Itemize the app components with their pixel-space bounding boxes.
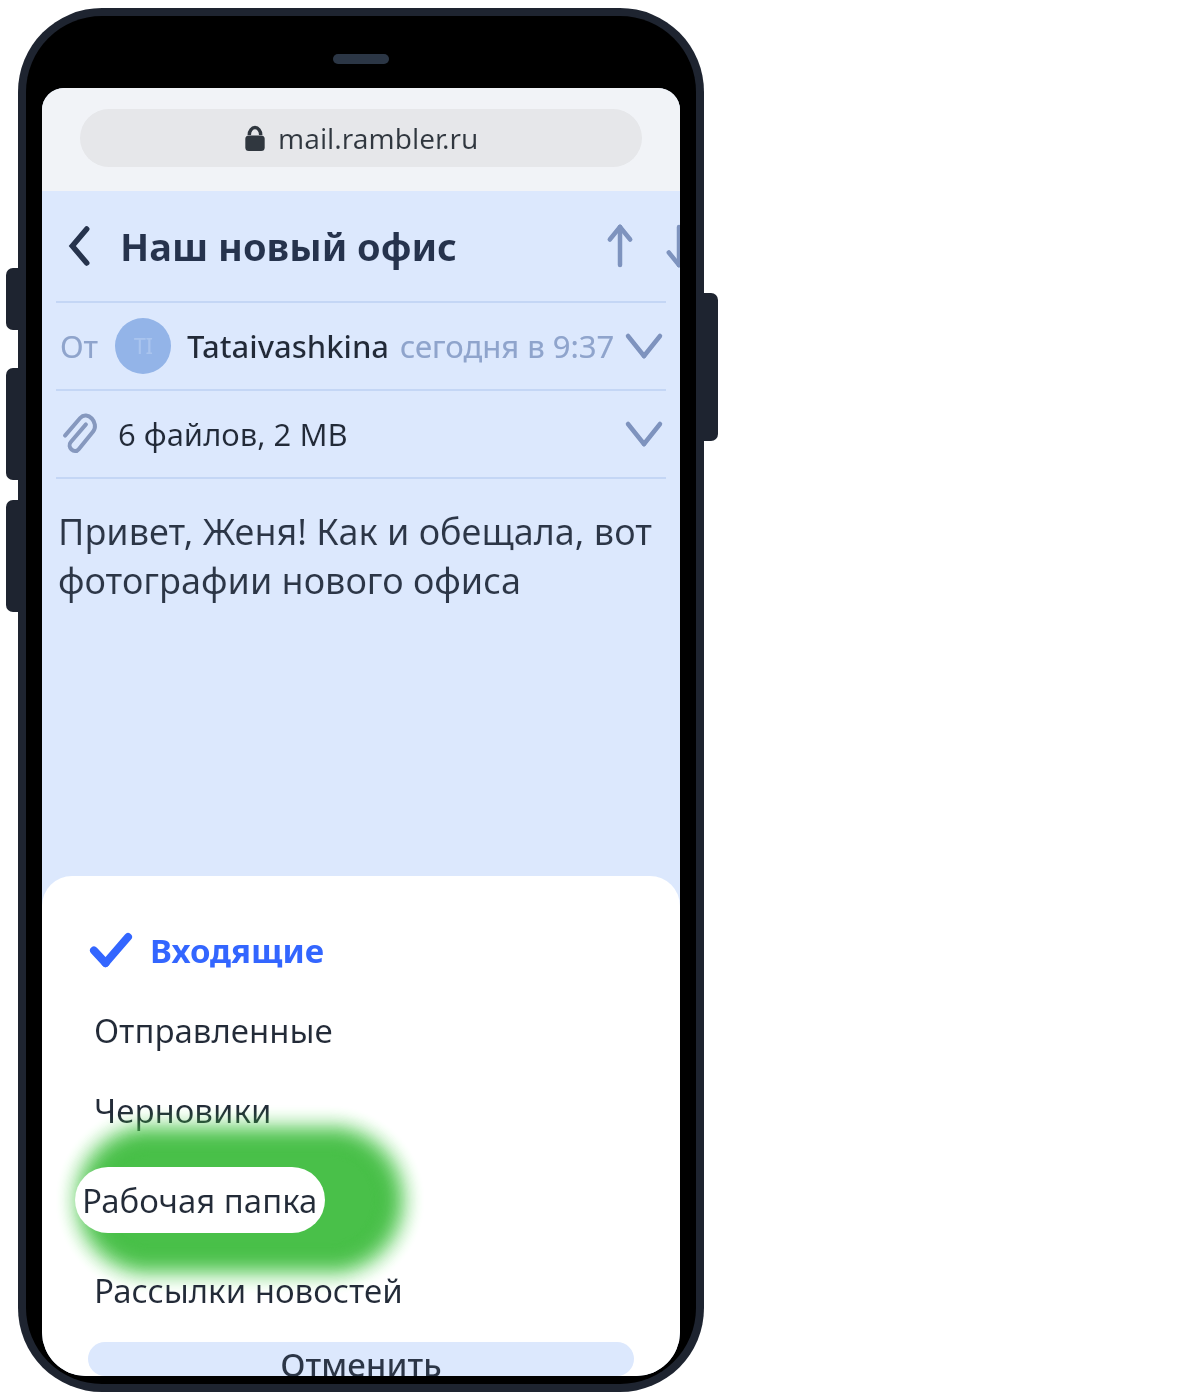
button[interactable]: Back [52,218,108,274]
staticText: Рассылки новостей [94,1268,403,1313]
button[interactable]: Входящие [42,910,680,990]
staticText: Привет, Женя! Как и обещала, вот [58,507,652,556]
staticText: Входящие [150,928,325,973]
staticText: Наш новый офис [120,220,458,272]
button[interactable]: Рабочая папка [75,1167,325,1233]
staticText: 6 файлов, 2 MB [118,413,348,455]
staticText: От [60,325,99,367]
button[interactable]: Expand attachments [616,406,672,462]
button[interactable]: От [42,303,680,389]
staticText: TI [134,332,153,361]
button[interactable]: Отправленные [42,990,680,1070]
staticText: mail.rambler.ru [278,119,479,157]
staticText: Tataivashkina [187,325,390,367]
staticText: Отменить [280,1342,442,1376]
button[interactable]: Next message [651,218,680,274]
button[interactable]: 6 файлов, 2 MB [42,391,680,477]
button[interactable]: Address bar [80,109,642,167]
staticText: фотографии нового офиса [58,556,521,605]
button[interactable]: Отменить [88,1342,634,1376]
button[interactable]: Рассылки новостей [42,1250,680,1330]
button[interactable]: Черновики [42,1070,680,1150]
staticText: Отправленные [94,1008,333,1053]
staticText: Рабочая папка [82,1178,318,1223]
button[interactable]: Expand sender [616,318,672,374]
button[interactable]: Previous message [592,218,648,274]
staticText: Черновики [94,1088,272,1133]
staticText: сегодня в 9:37 [400,325,615,367]
